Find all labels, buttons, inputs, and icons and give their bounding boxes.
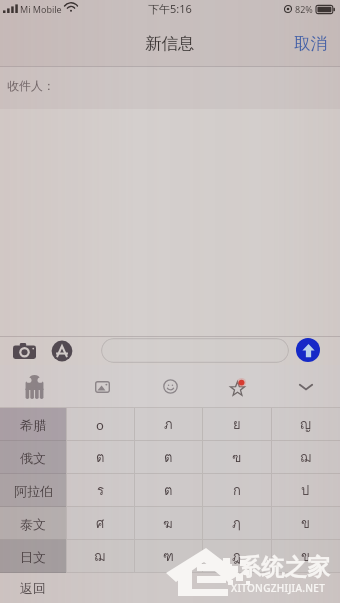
staticText: ο (96, 416, 104, 434)
button[interactable]: 返回 (0, 573, 66, 603)
button[interactable]: ศ (66, 507, 134, 540)
button[interactable]: ฦ (202, 507, 271, 540)
button[interactable]: ฌ (66, 540, 134, 573)
button[interactable]: ย (202, 408, 271, 441)
staticText: ย (233, 414, 241, 435)
button[interactable]: Camera (9, 337, 40, 364)
button[interactable]: ฎ (202, 540, 271, 573)
staticText: ต (164, 480, 173, 501)
staticText: ข (301, 513, 310, 534)
staticText: 下午5:16 (148, 1, 192, 16)
staticText: ศ (96, 513, 105, 534)
staticText: 新信息 (145, 33, 195, 54)
button[interactable]: Photos (68, 365, 136, 408)
staticText: ฌ (94, 546, 106, 567)
staticText: ฦ (232, 513, 241, 534)
staticText: ฑ (163, 546, 174, 567)
staticText: 82% (295, 3, 313, 15)
staticText: ข (301, 546, 310, 567)
button[interactable]: Emoji (136, 365, 204, 408)
staticText: 返回 (20, 580, 46, 596)
staticText: 泰文 (20, 516, 46, 532)
staticText: XITONGZHIJIA.NET (231, 581, 326, 595)
staticText: 收件人： (7, 78, 55, 93)
staticText: ก (233, 480, 241, 501)
staticText: ญ (300, 414, 312, 435)
button[interactable]: ป (271, 474, 340, 507)
button[interactable]: 取消 (282, 25, 340, 62)
staticText: 取消 (294, 33, 327, 54)
button[interactable]: App Store (48, 337, 76, 365)
button[interactable]: ต (134, 474, 202, 507)
staticText: ต (164, 447, 173, 468)
button[interactable]: 日文 (0, 540, 66, 573)
button[interactable]: ข (271, 540, 340, 573)
button[interactable]: ข (271, 507, 340, 540)
button[interactable]: ร (66, 474, 134, 507)
staticText: Mi Mobile (20, 3, 62, 15)
button[interactable]: 希腊 (0, 408, 66, 441)
staticText: ฆ (163, 513, 173, 534)
button[interactable]: 阿拉伯 (0, 474, 66, 507)
staticText: 系统之家 (238, 553, 330, 582)
staticText: ฎ (232, 546, 241, 567)
button[interactable]: 泰文 (0, 507, 66, 540)
button[interactable]: ο (66, 408, 134, 441)
button[interactable]: ต (66, 441, 134, 474)
staticText: ต (96, 447, 105, 468)
staticText: 希腊 (20, 417, 46, 433)
button[interactable]: ต (134, 441, 202, 474)
button[interactable]: ก (202, 474, 271, 507)
button[interactable]: ญ (271, 408, 340, 441)
button[interactable]: Collapse (272, 365, 340, 408)
staticText: 阿拉伯 (14, 483, 53, 499)
button[interactable]: Memoji (0, 365, 68, 408)
staticText: 日文 (20, 549, 46, 565)
staticText: 俄文 (20, 450, 46, 466)
staticText: ฌ (300, 447, 312, 468)
button[interactable] (101, 338, 289, 363)
button[interactable]: 俄文 (0, 441, 66, 474)
staticText: ร (97, 480, 104, 501)
button[interactable]: ฆ (134, 507, 202, 540)
button[interactable]: Favorites (204, 365, 272, 408)
staticText: ป (301, 480, 310, 501)
staticText: ฃ (232, 447, 242, 468)
button[interactable]: ภ (134, 408, 202, 441)
button[interactable]: Send (296, 338, 320, 362)
button[interactable]: ฌ (271, 441, 340, 474)
staticText: ภ (164, 414, 173, 435)
button[interactable]: ฑ (134, 540, 202, 573)
button[interactable]: ฃ (202, 441, 271, 474)
